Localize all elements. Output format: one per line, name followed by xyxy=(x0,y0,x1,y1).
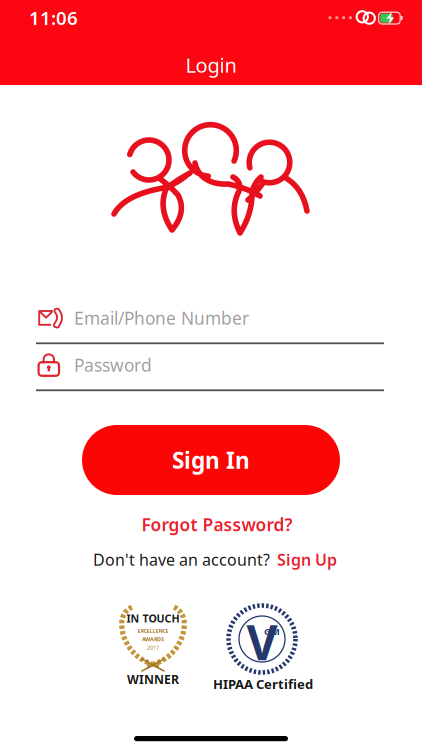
staticText: HIPAA Certified xyxy=(213,675,313,693)
staticText: 11:06 xyxy=(29,5,78,30)
staticText: EXCELLENCE xyxy=(137,627,168,634)
staticText: Forgot Password? xyxy=(141,513,292,536)
staticText: Password xyxy=(74,353,152,376)
staticText: Sign Up xyxy=(277,549,337,570)
staticText: V xyxy=(246,609,277,674)
button[interactable]: Sign Up xyxy=(277,549,337,570)
staticText: GM xyxy=(264,625,280,638)
button[interactable]: Email/Phone Number xyxy=(37,301,422,335)
button[interactable]: Sign In xyxy=(82,425,340,495)
staticText: WINNER xyxy=(127,671,179,688)
staticText: Login xyxy=(185,52,236,78)
button[interactable]: Password xyxy=(37,348,422,382)
staticText: AWARDS xyxy=(142,636,164,643)
button[interactable]: Forgot Password? xyxy=(141,513,292,536)
staticText: Sign In xyxy=(172,445,250,475)
staticText: Email/Phone Number xyxy=(74,306,249,329)
staticText: 2017 xyxy=(147,644,159,651)
staticText: Don't have an account? xyxy=(93,549,270,570)
staticText: IN TOUCH xyxy=(126,611,179,625)
